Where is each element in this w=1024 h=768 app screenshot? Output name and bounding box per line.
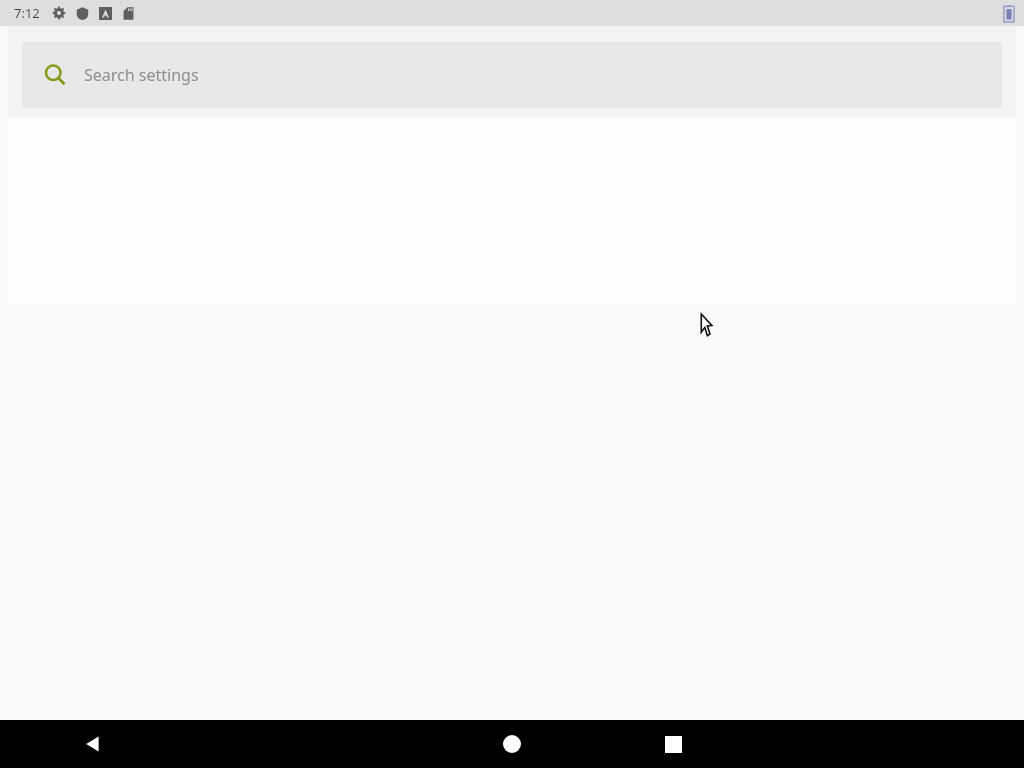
button[interactable]: Search settings	[22, 42, 1002, 108]
button[interactable]: Home	[472, 720, 552, 768]
staticText: Search settings	[84, 64, 199, 86]
button[interactable]: Back	[0, 720, 512, 768]
button[interactable]: Recent apps	[633, 720, 713, 768]
staticText: 7:12	[14, 4, 40, 22]
